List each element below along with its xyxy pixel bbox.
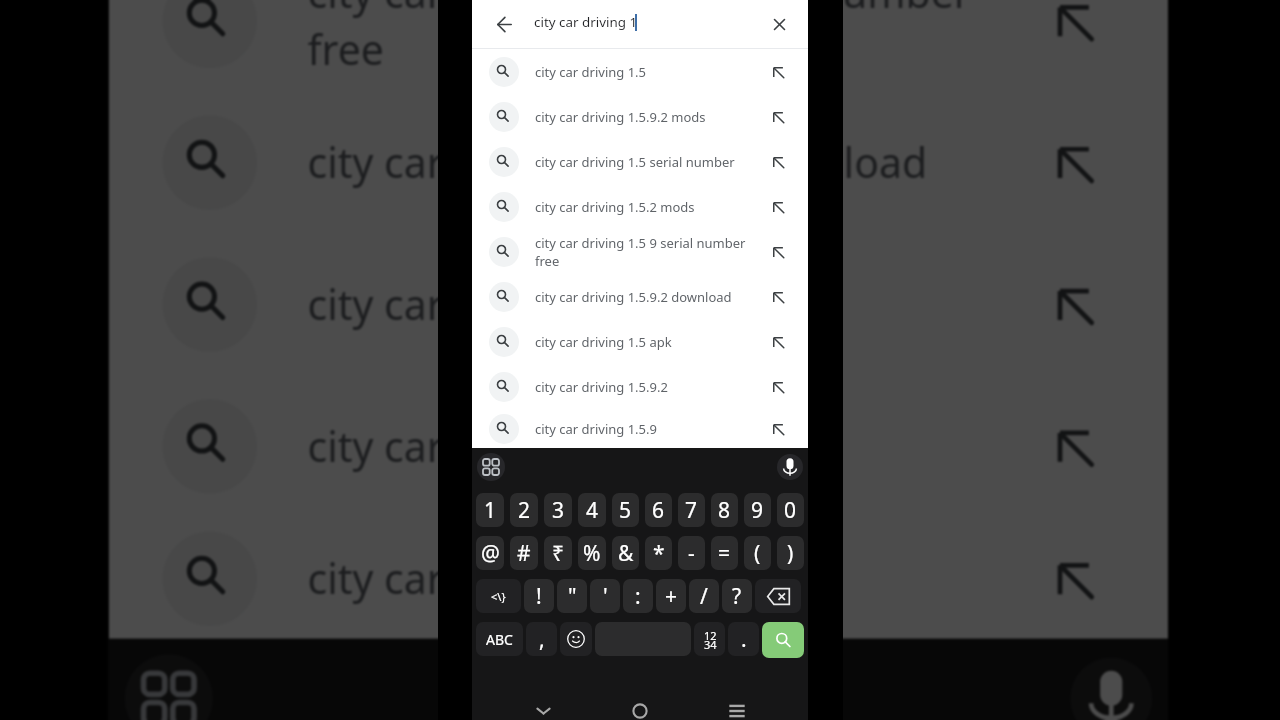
button[interactable]: city car driving 1.5 9 serial number [472, 229, 808, 274]
button[interactable]: 4 [578, 493, 606, 527]
button[interactable]: 3 [544, 493, 572, 527]
staticText: - [688, 539, 695, 568]
button[interactable]: ? [722, 579, 752, 613]
button[interactable]: 5 [612, 493, 639, 527]
button[interactable]: Voice input [1070, 657, 1152, 720]
staticText: 1 [484, 496, 497, 525]
staticText: + [665, 582, 678, 611]
staticText: city car driving 1.5.9.2 [535, 378, 668, 396]
button[interactable]: @ [476, 536, 504, 570]
button[interactable]: Numbers [694, 622, 725, 656]
button[interactable]: % [578, 536, 606, 570]
button[interactable]: ( [744, 536, 771, 570]
button[interactable]: Insert suggestion [761, 100, 795, 134]
button[interactable]: ' [590, 579, 620, 613]
button[interactable]: city car driving 1.5.9.2 [109, 374, 1168, 516]
button[interactable]: Insert suggestion [761, 412, 795, 446]
button[interactable]: Insert suggestion [761, 190, 795, 224]
button[interactable]: city car driving 1.5.9.2 download [472, 274, 808, 319]
staticText: ? [732, 582, 742, 611]
button[interactable]: ! [524, 579, 554, 613]
button[interactable]: Emoji [560, 622, 592, 656]
staticText: , [539, 625, 545, 654]
button[interactable]: city car driving 1.5 apk [472, 319, 808, 364]
button[interactable]: city car driving 1.5.9 [472, 409, 808, 448]
button[interactable]: Backspace [755, 579, 801, 613]
button[interactable]: ) [777, 536, 804, 570]
button[interactable]: , [526, 622, 557, 656]
button[interactable]: Keyboard options [477, 453, 505, 481]
button[interactable]: city car driving 1.5.9.2 download [109, 90, 1168, 232]
button[interactable]: - [678, 536, 705, 570]
button[interactable]: : [623, 579, 653, 613]
staticText: city car driving 1 [534, 13, 638, 31]
button[interactable]: Insert suggestion [1020, 109, 1127, 216]
button[interactable]: Insert suggestion [1020, 393, 1127, 500]
button[interactable]: Insert suggestion [1020, 251, 1127, 358]
staticText: city car driving 1.5.9.2 download [535, 288, 732, 306]
button[interactable]: Insert suggestion [1020, 525, 1127, 632]
button[interactable]: . [728, 622, 759, 656]
staticText: @ [481, 539, 500, 568]
staticText: : [635, 582, 641, 611]
button[interactable]: = [711, 536, 738, 570]
staticText: ' [603, 582, 608, 611]
button[interactable]: Insert suggestion [761, 145, 795, 179]
staticText: 6 [652, 496, 665, 525]
staticText: & [618, 539, 634, 568]
staticText: ! [536, 582, 542, 611]
staticText: city car driving 1.5 [535, 63, 647, 81]
staticText: ) [787, 539, 794, 568]
button[interactable]: city car driving 1.5.9.2 mods [472, 94, 808, 139]
button[interactable]: 2 [510, 493, 538, 527]
staticText: . [741, 625, 747, 654]
button[interactable]: Insert suggestion [761, 55, 795, 89]
button[interactable]: Search [762, 622, 804, 658]
staticText: 9 [751, 496, 764, 525]
button[interactable]: Keyboard options [125, 654, 213, 720]
button[interactable]: Insert suggestion [761, 325, 795, 359]
button[interactable]: Insert suggestion [1020, 0, 1127, 74]
button[interactable]: + [656, 579, 686, 613]
staticText: city car driving 1.5 9 serial number [307, 0, 973, 21]
button[interactable]: / [689, 579, 719, 613]
button[interactable]: Home [622, 702, 658, 720]
button[interactable]: ABC [476, 622, 523, 656]
button[interactable]: " [557, 579, 587, 613]
staticText: city car driving 1.5 apk [535, 333, 672, 351]
button[interactable]: city car driving 1.5 apk [109, 232, 1168, 374]
staticText: free [535, 252, 560, 270]
button[interactable]: Voice input [777, 454, 803, 480]
button[interactable]: 6 [645, 493, 672, 527]
button[interactable]: Back [492, 12, 516, 36]
button[interactable]: <\} [476, 579, 521, 613]
button[interactable]: Clear [764, 9, 794, 39]
button[interactable]: Insert suggestion [761, 235, 795, 269]
button[interactable]: 7 [678, 493, 705, 527]
button[interactable]: city car driving 1.5 [472, 49, 808, 94]
button[interactable]: & [612, 536, 639, 570]
button[interactable]: * [645, 536, 672, 570]
button[interactable]: 0 [777, 493, 804, 527]
button[interactable]: city car driving 1.5.2 mods [472, 184, 808, 229]
staticText: 7 [685, 496, 698, 525]
button[interactable]: ₹ [544, 536, 572, 570]
button[interactable]: city car driving 1.5.9 [109, 516, 1168, 639]
staticText: 34 [704, 637, 717, 652]
button[interactable]: city car driving 1.5.9.2 [472, 364, 808, 409]
button[interactable]: Insert suggestion [761, 370, 795, 404]
button[interactable]: 1 [476, 493, 504, 527]
button[interactable]: # [510, 536, 538, 570]
staticText: % [583, 539, 601, 568]
staticText: / [700, 582, 708, 611]
button[interactable]: Insert suggestion [761, 280, 795, 314]
button[interactable]: 8 [711, 493, 738, 527]
button[interactable]: Recents [719, 702, 755, 720]
staticText: city car driving 1.5 9 serial number [535, 234, 746, 252]
button[interactable]: city car driving 1.5 9 serial number [109, 0, 1168, 90]
button[interactable]: 9 [744, 493, 771, 527]
button[interactable]: Hide keyboard [525, 702, 561, 720]
button[interactable]: city car driving 1.5 serial number [472, 139, 808, 184]
